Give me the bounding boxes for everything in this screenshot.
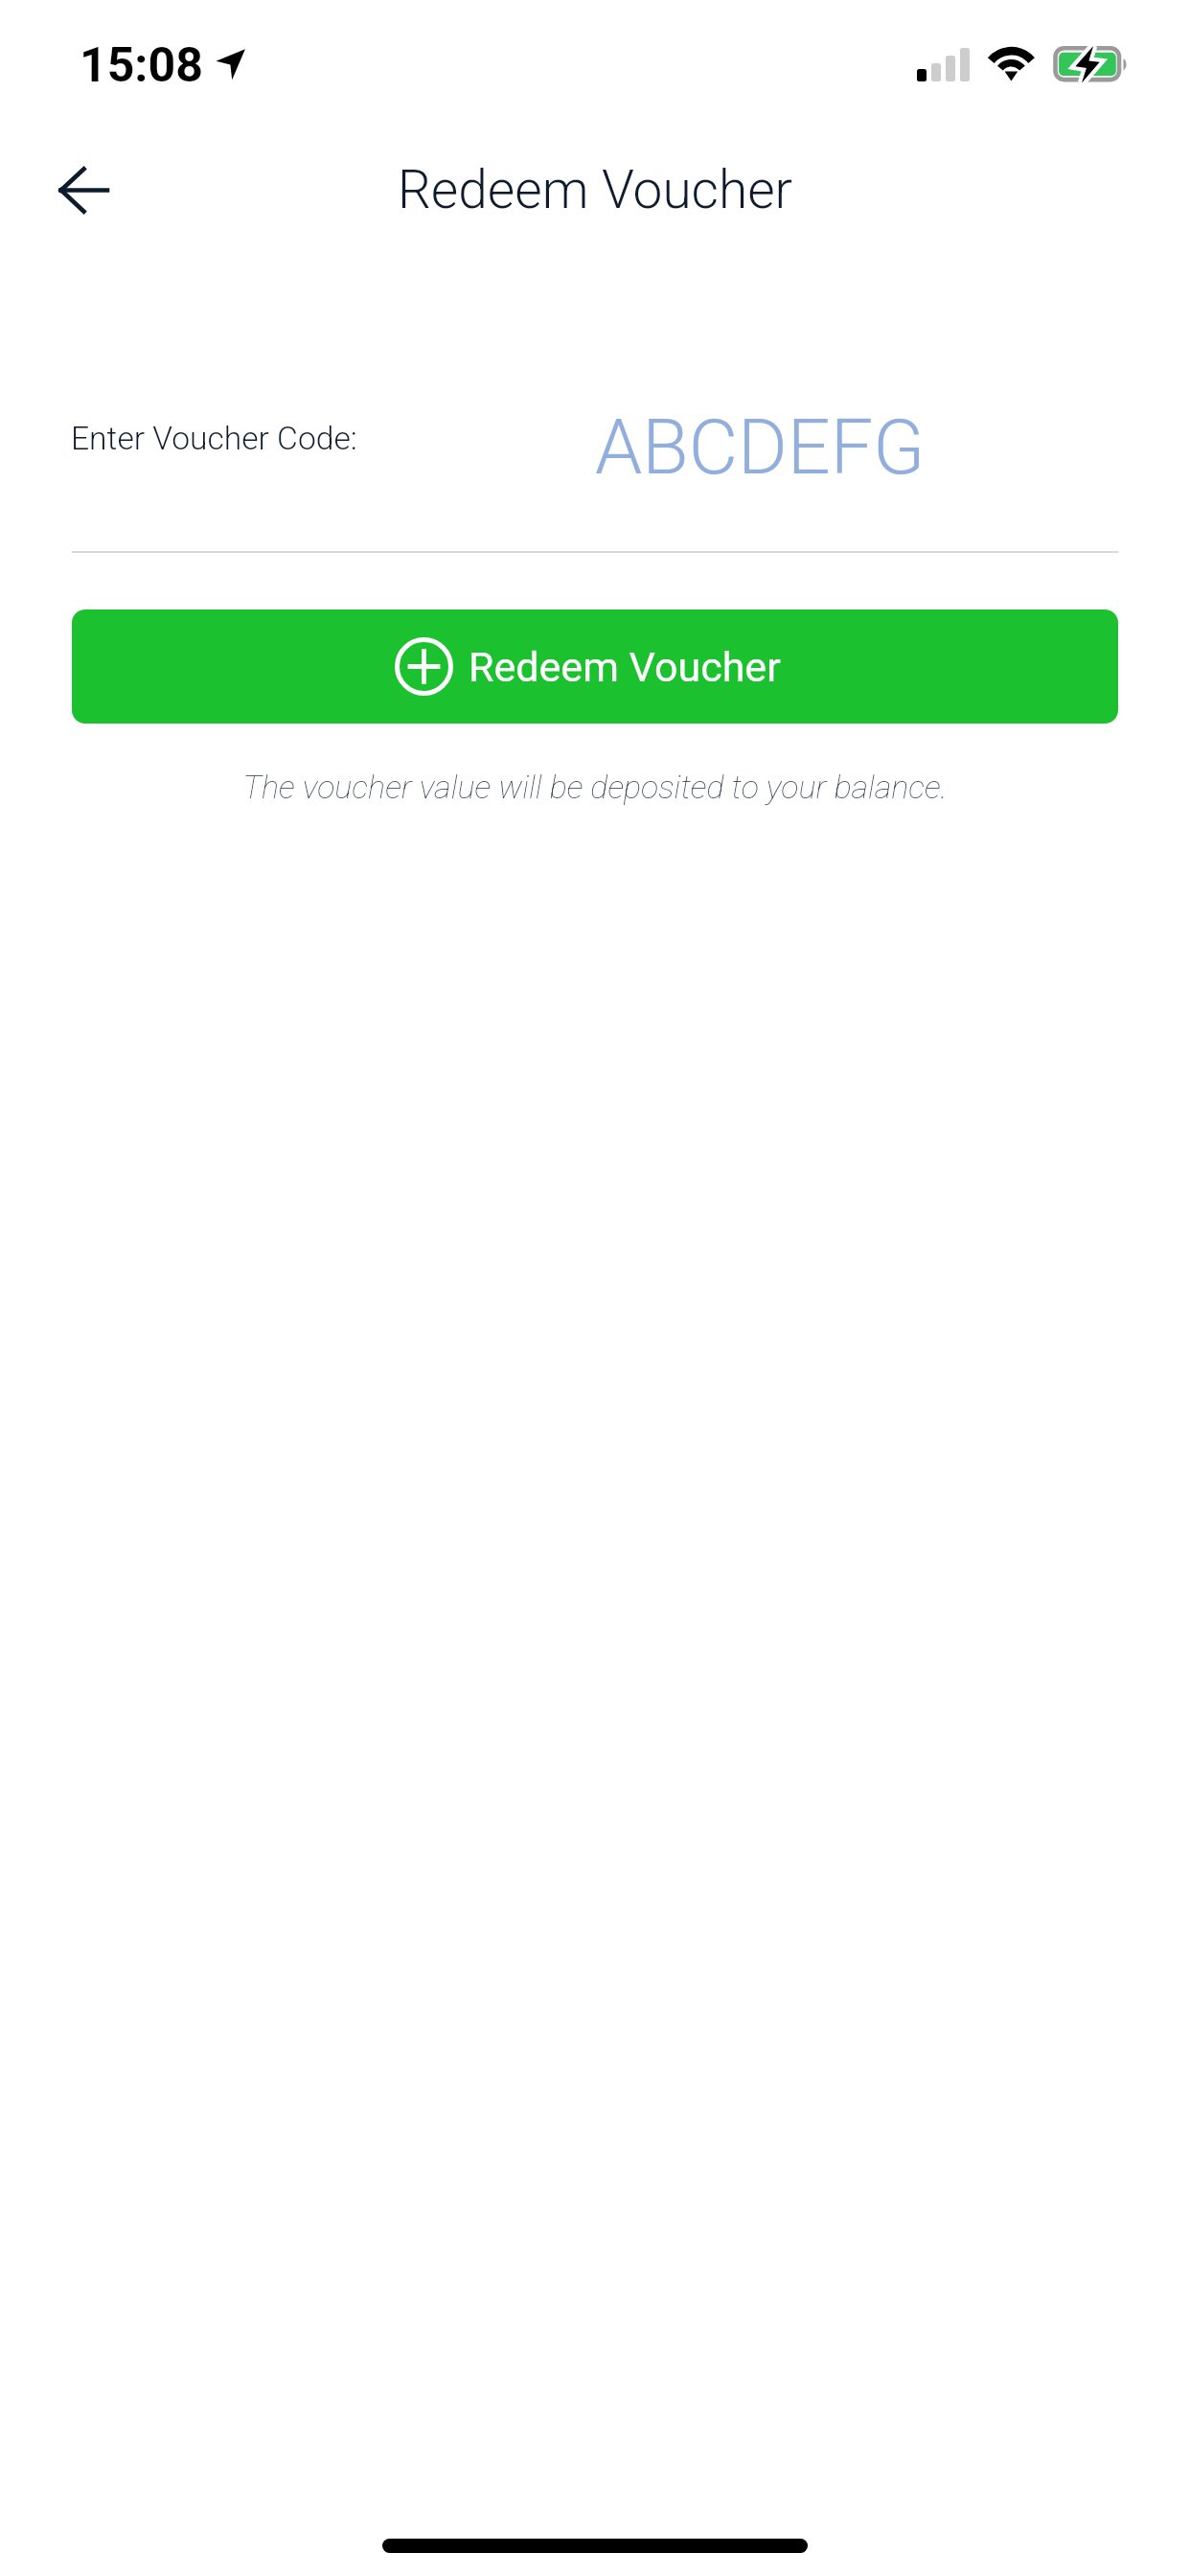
button[interactable]: Enter Voucher Code bbox=[72, 383, 1118, 553]
staticText: Enter Voucher Code: bbox=[71, 420, 357, 457]
staticText: 15:08 bbox=[80, 37, 203, 94]
staticText: Redeem Voucher bbox=[469, 643, 781, 691]
staticText: ABCDEFG bbox=[595, 403, 926, 493]
staticText: Redeem Voucher bbox=[0, 159, 1190, 220]
button[interactable]: Back bbox=[25, 132, 140, 247]
button[interactable]: Redeem Voucher bbox=[72, 609, 1118, 724]
staticText: The voucher value will be deposited to y… bbox=[0, 768, 1190, 806]
